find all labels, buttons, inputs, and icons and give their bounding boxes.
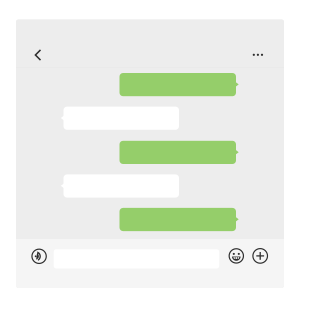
button[interactable]: Back bbox=[23, 40, 53, 70]
button[interactable]: Emoji bbox=[223, 242, 249, 270]
button[interactable]: Voice message bbox=[25, 242, 53, 270]
button[interactable]: More options bbox=[247, 242, 273, 270]
button[interactable]: More bbox=[243, 40, 273, 70]
